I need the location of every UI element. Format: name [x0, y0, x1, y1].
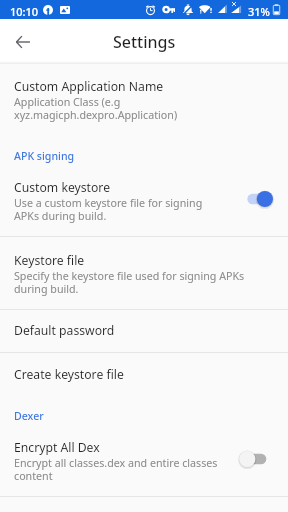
- button[interactable]: Custom keystore: [0, 179, 288, 223]
- button[interactable]: Back: [7, 26, 38, 57]
- button[interactable]: Encrypt All Dex: [0, 439, 288, 483]
- button[interactable]: Custom Application Name: [0, 78, 288, 122]
- staticText: Keystore file: [14, 252, 85, 269]
- staticText: Application Class (e.g xyz.magicph.dexpr…: [14, 95, 178, 122]
- staticText: Custom Application Name: [14, 78, 164, 95]
- staticText: Encrypt all classes.dex and entire class…: [14, 456, 218, 483]
- button[interactable]: Custom keystore enabled: [239, 189, 273, 209]
- staticText: Default password: [14, 322, 115, 339]
- button[interactable]: Create keystore file: [0, 366, 288, 383]
- button[interactable]: Encrypt All Dex disabled: [239, 449, 273, 469]
- staticText: 31%: [248, 4, 270, 19]
- staticText: Settings: [113, 31, 176, 53]
- staticText: APK signing: [14, 149, 75, 163]
- staticText: Encrypt All Dex: [14, 439, 100, 456]
- staticText: Use a custom keystore file for signing A…: [14, 196, 203, 223]
- button[interactable]: Keystore file: [0, 252, 288, 296]
- staticText: Custom keystore: [14, 179, 111, 196]
- staticText: 10:10: [10, 4, 39, 19]
- staticText: Specify the keystore file used for signi…: [14, 269, 245, 296]
- button[interactable]: Default password: [0, 322, 288, 339]
- staticText: Create keystore file: [14, 366, 124, 383]
- staticText: Dexer: [14, 409, 44, 423]
